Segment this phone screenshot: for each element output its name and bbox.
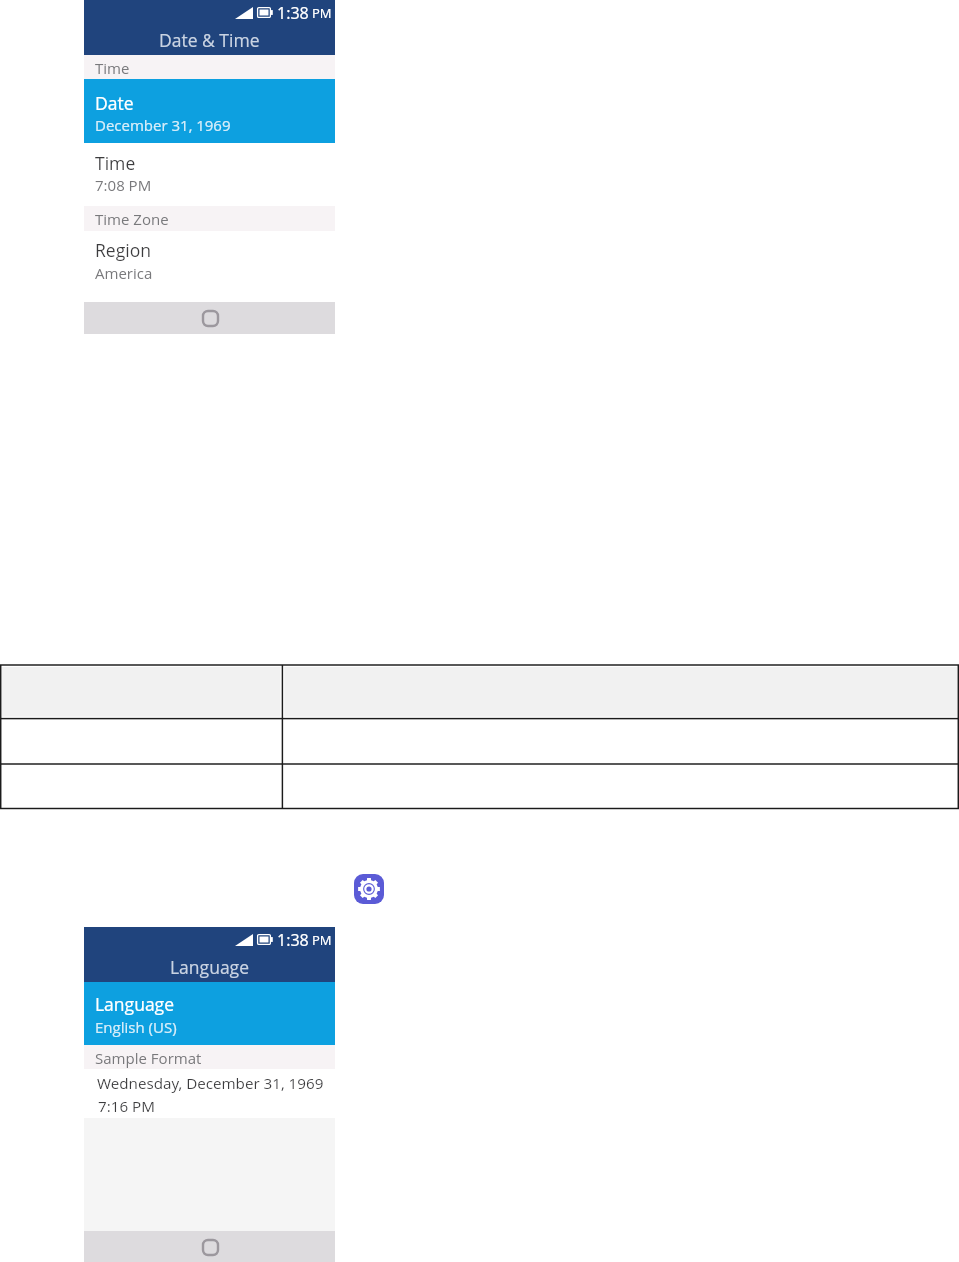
staticText: PM — [312, 931, 332, 949]
staticText: Date — [95, 91, 134, 115]
staticText: Wednesday, December 31, 1969 — [97, 1073, 324, 1094]
staticText: 7:16 PM — [98, 1096, 155, 1117]
staticText: America — [95, 263, 153, 283]
button[interactable]: Settings — [354, 874, 384, 904]
button[interactable]: Home — [196, 304, 224, 332]
staticText: Language — [95, 992, 175, 1016]
button[interactable]: Time — [84, 143, 335, 206]
button[interactable]: Region — [84, 231, 335, 302]
staticText: Time — [95, 151, 136, 175]
staticText: Date & Time — [159, 28, 260, 52]
staticText: Time Zone — [95, 209, 169, 229]
staticText: Language — [170, 955, 250, 979]
button[interactable]: Language — [84, 982, 335, 1045]
staticText: 1:38 — [277, 2, 309, 24]
staticText: English (US) — [95, 1017, 177, 1037]
staticText: 7:08 PM — [95, 175, 152, 195]
staticText: Sample Format — [95, 1048, 202, 1068]
staticText: PM — [312, 4, 332, 22]
button[interactable]: Time — [84, 55, 335, 79]
button[interactable]: Sample Format — [84, 1045, 335, 1069]
staticText: Region — [95, 238, 151, 262]
button[interactable]: Date — [84, 79, 335, 143]
staticText: December 31, 1969 — [95, 115, 231, 135]
button[interactable]: Wednesday, December 31, 1969 — [84, 1069, 335, 1118]
button[interactable]: Home — [196, 1233, 224, 1261]
staticText: 1:38 — [277, 929, 309, 951]
staticText: Time — [95, 58, 130, 78]
button[interactable]: Time Zone — [84, 206, 335, 231]
